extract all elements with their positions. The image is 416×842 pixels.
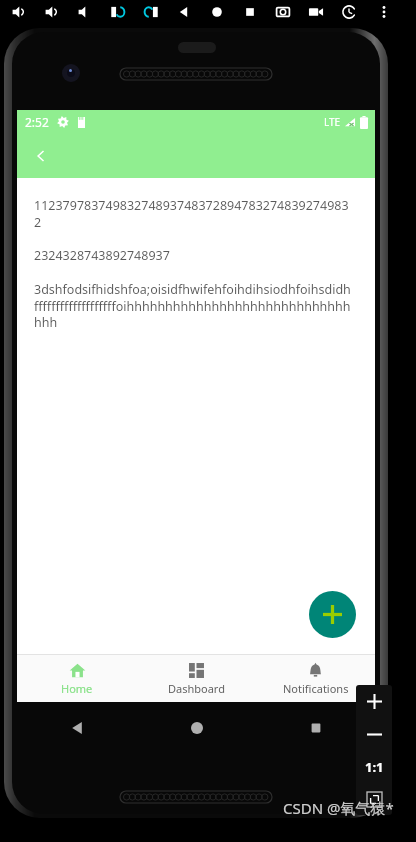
- staticText: 1123797837498327489374837289478327483927…: [34, 197, 358, 230]
- button[interactable]: Emulator control: [167, 0, 200, 24]
- staticText: 3dshfodsifhidshfoa;oisidfhwifehfoihdihsi…: [34, 281, 358, 330]
- button[interactable]: Emulator control: [200, 0, 233, 24]
- staticText: CSDN @氧气猿*: [283, 798, 394, 818]
- button[interactable]: Emulator control: [367, 0, 400, 24]
- button[interactable]: Navigate up: [23, 138, 59, 174]
- staticText: 2:52: [25, 114, 49, 130]
- button[interactable]: Zoom in: [356, 685, 392, 718]
- button[interactable]: 1:1: [356, 751, 392, 783]
- button[interactable]: Emulator control: [233, 0, 266, 24]
- staticText: LTE: [324, 115, 341, 129]
- button[interactable]: Home: [137, 702, 256, 754]
- staticText: 2324328743892748937: [34, 247, 358, 264]
- button[interactable]: Emulator control: [101, 0, 134, 24]
- button[interactable]: Emulator control: [332, 0, 365, 24]
- button[interactable]: Back: [17, 702, 137, 754]
- button[interactable]: Add: [309, 591, 356, 638]
- button[interactable]: Emulator control: [134, 0, 167, 24]
- button[interactable]: Emulator control: [299, 0, 332, 24]
- button[interactable]: Notifications: [256, 655, 375, 702]
- button[interactable]: Emulator control: [2, 0, 35, 24]
- button[interactable]: Home: [17, 655, 137, 702]
- button[interactable]: Dashboard: [137, 655, 256, 702]
- button[interactable]: Fit to window: [356, 783, 392, 815]
- button[interactable]: Recents: [256, 702, 375, 754]
- button[interactable]: Emulator control: [266, 0, 299, 24]
- button[interactable]: Emulator control: [35, 0, 68, 24]
- staticText: Home: [61, 681, 93, 696]
- staticText: 1:1: [365, 758, 384, 776]
- button[interactable]: Emulator control: [68, 0, 101, 24]
- staticText: Notifications: [283, 681, 349, 696]
- button[interactable]: Zoom out: [356, 718, 392, 751]
- staticText: Dashboard: [168, 681, 225, 696]
